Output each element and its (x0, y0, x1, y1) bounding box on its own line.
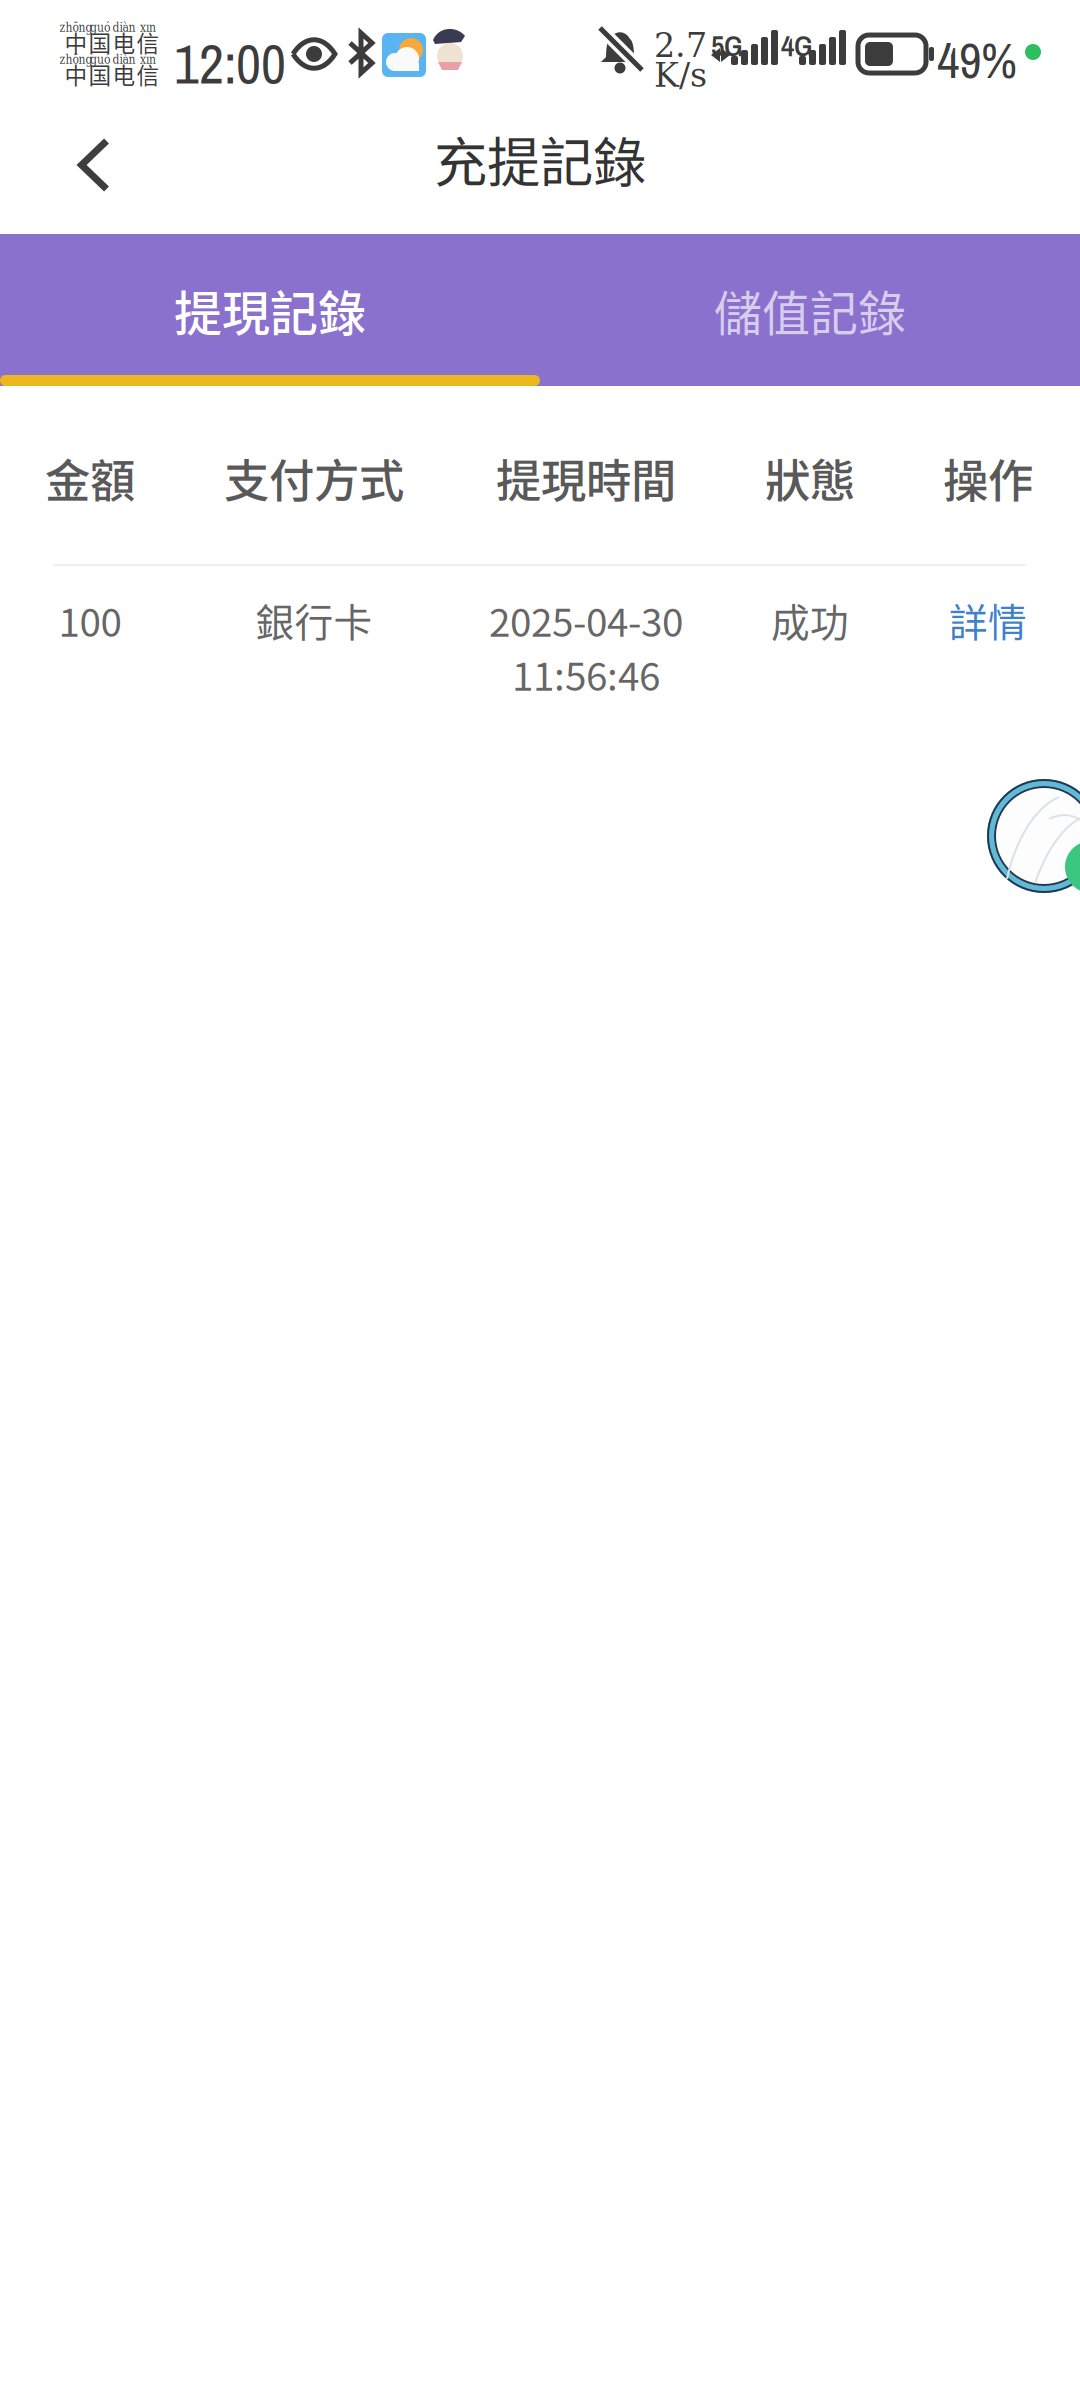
staticText: 詳情 (949, 592, 1027, 648)
staticText: 4G (781, 26, 813, 65)
staticText: diàn (112, 52, 135, 66)
staticText: xīn (140, 20, 156, 34)
staticText: guó (90, 52, 110, 66)
staticText: 100 (58, 592, 121, 648)
staticText: 国 (88, 26, 111, 58)
staticText: 中 (64, 26, 87, 58)
staticText: diàn (112, 20, 135, 34)
staticText: 儲值記錄 (714, 275, 906, 345)
button[interactable]: Customer service (987, 779, 1080, 893)
staticText: 信 (136, 26, 159, 58)
staticText: zhōng (59, 52, 92, 66)
button[interactable]: 儲值記錄 (540, 234, 1080, 386)
staticText: 充提記錄 (434, 120, 646, 198)
staticText: 5G (711, 26, 743, 65)
staticText: 操作 (943, 445, 1033, 511)
staticText: 11:56:46 (512, 646, 660, 702)
staticText: guó (90, 20, 110, 34)
staticText: xīn (140, 52, 156, 66)
staticText: 信 (136, 58, 159, 90)
staticText: 提現時間 (496, 445, 676, 511)
staticText: 支付方式 (224, 445, 404, 511)
staticText: 金額 (45, 445, 135, 511)
staticText: 2025-04-30 (489, 592, 683, 648)
staticText: 中 (64, 58, 87, 90)
staticText: zhōng (59, 20, 92, 34)
staticText: 提現記錄 (174, 275, 366, 345)
button[interactable]: 詳情 (896, 593, 1080, 647)
staticText: 国 (88, 58, 111, 90)
staticText: 电 (112, 58, 135, 90)
button[interactable]: Back (46, 117, 142, 213)
button[interactable]: 提現記錄 (0, 234, 540, 386)
staticText: 12:00 (174, 27, 286, 101)
staticText: 电 (112, 26, 135, 58)
staticText: 銀行卡 (255, 592, 372, 648)
staticText: 狀態 (765, 445, 855, 511)
staticText: 成功 (771, 592, 849, 648)
staticText: 49% (937, 27, 1017, 93)
staticText: 2.7 (654, 26, 707, 65)
staticText: K/s (654, 56, 707, 95)
